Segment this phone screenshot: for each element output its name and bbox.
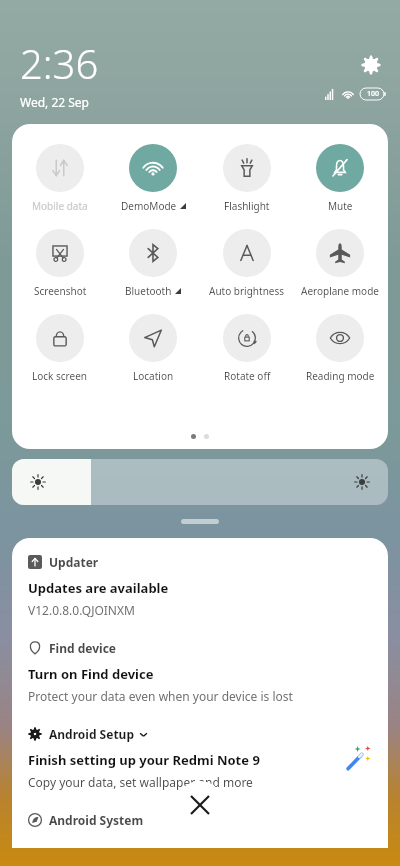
staticText: Reading mode	[306, 369, 375, 383]
button[interactable]: Brightness	[12, 459, 388, 505]
staticText: Turn on Find device	[28, 665, 154, 683]
staticText: Location	[133, 369, 174, 383]
staticText: Copy your data, set wallpaper and more	[28, 774, 253, 790]
button[interactable]: Reading mode	[295, 312, 385, 385]
button[interactable]: Lock screen	[15, 312, 105, 385]
staticText: Bluetooth	[125, 284, 172, 298]
staticText: DemoMode	[121, 199, 177, 213]
staticText: Updater	[49, 554, 99, 570]
button[interactable]: Auto brightness	[202, 227, 292, 300]
staticText: Screenshot	[34, 284, 87, 298]
staticText: Protect your data even when your device …	[28, 688, 293, 704]
staticText: Android Setup	[49, 726, 134, 742]
button[interactable]: Updater	[28, 554, 372, 618]
button[interactable]: Screenshot	[15, 227, 105, 300]
staticText: Android System	[49, 812, 144, 828]
staticText: Updates are available	[28, 579, 169, 597]
staticText: Find device	[49, 640, 116, 656]
staticText: Auto brightness	[209, 284, 285, 298]
staticText: Finish setting up your Redmi Note 9	[28, 751, 260, 769]
staticText: Mobile data	[32, 199, 88, 213]
button[interactable]: Mobile data	[15, 142, 105, 215]
button[interactable]: Find device	[28, 640, 372, 704]
staticText: V12.0.8.0.QJOINXM	[28, 602, 135, 618]
button[interactable]: Close	[176, 781, 224, 829]
staticText: Wed, 22 Sep	[20, 94, 89, 110]
button[interactable]: Bluetooth	[108, 227, 198, 300]
staticText: 100	[367, 89, 380, 99]
button[interactable]: DemoMode	[108, 142, 198, 215]
staticText: Lock screen	[32, 369, 88, 383]
button[interactable]: Android System	[28, 812, 372, 828]
staticText: Flashlight	[224, 199, 270, 213]
button[interactable]: Rotate off	[202, 312, 292, 385]
button[interactable]: Aeroplane mode	[295, 227, 385, 300]
staticText: Mute	[328, 199, 353, 213]
button[interactable]: Android Setup	[28, 726, 372, 790]
staticText: 2:36	[20, 36, 99, 90]
button[interactable]: Mute	[295, 142, 385, 215]
staticText: Rotate off	[224, 369, 271, 383]
button[interactable]: Settings	[356, 50, 386, 80]
button[interactable]: Location	[108, 312, 198, 385]
staticText: Aeroplane mode	[301, 284, 379, 298]
button[interactable]: Flashlight	[202, 142, 292, 215]
